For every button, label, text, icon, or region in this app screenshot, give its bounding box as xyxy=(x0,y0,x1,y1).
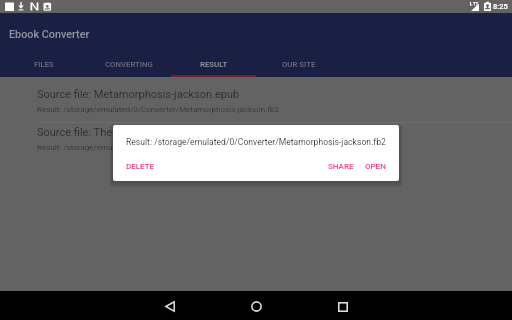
button[interactable]: OUR SITE xyxy=(255,53,340,77)
button[interactable]: OPEN xyxy=(361,160,390,173)
staticText: RESULT xyxy=(200,60,228,69)
staticText: Result: /storage/emulated/0/Converter/Me… xyxy=(37,105,279,114)
staticText: SHARE xyxy=(328,162,354,171)
button[interactable]: FILES xyxy=(0,53,85,77)
staticText: Result: /storage/emulated/0/Converter/Th… xyxy=(37,143,254,152)
button[interactable]: Source file: Metamorphosis-jackson.epub xyxy=(0,79,512,117)
staticText: OUR SITE xyxy=(282,60,316,69)
staticText: OPEN xyxy=(365,162,386,171)
staticText: Source file: The-Trial-jackson.epub xyxy=(37,126,205,139)
button[interactable]: SHARE xyxy=(324,160,358,173)
button[interactable]: CONVERTING xyxy=(85,53,170,77)
staticText: CONVERTING xyxy=(105,60,153,69)
staticText: DELETE xyxy=(126,162,155,171)
staticText: Result: /storage/emulated/0/Converter/Me… xyxy=(126,137,386,147)
staticText: Ebook Converter xyxy=(9,28,90,41)
staticText: Source file: Metamorphosis-jackson.epub xyxy=(37,88,240,101)
button[interactable]: Home xyxy=(239,293,274,320)
button[interactable]: DELETE xyxy=(122,160,159,173)
button[interactable]: RESULT xyxy=(170,53,255,77)
button[interactable]: Back xyxy=(152,293,187,320)
staticText: 8:25 xyxy=(493,2,508,11)
button[interactable]: Source file: The-Trial-jackson.epub xyxy=(0,117,512,155)
staticText: FILES xyxy=(34,60,54,69)
button[interactable]: Recent apps xyxy=(325,293,360,320)
